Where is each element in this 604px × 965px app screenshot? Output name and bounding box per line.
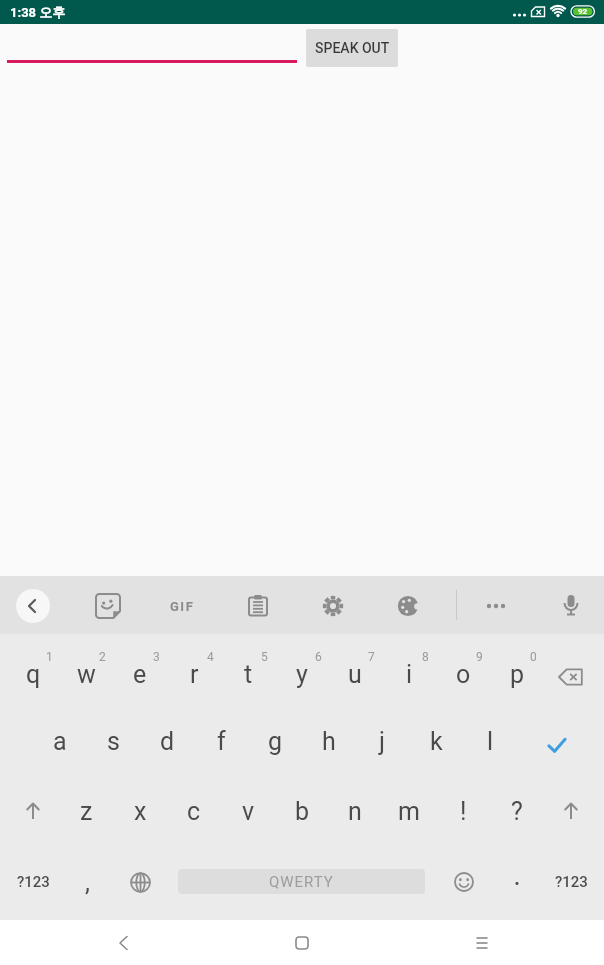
staticText: y [296,660,308,689]
staticText: q [26,660,41,689]
staticText: ! [460,797,467,826]
staticText: QWERTY [269,873,334,891]
button[interactable] [527,715,587,775]
button[interactable] [16,589,50,623]
button[interactable]: k [410,709,462,773]
button[interactable]: n [329,779,381,843]
staticText: i [406,660,413,689]
staticText: 1 [46,650,53,664]
staticText: l [487,727,494,756]
staticText: t [244,660,253,689]
button[interactable]: d [141,709,193,773]
button[interactable] [388,586,428,626]
button[interactable]: t [222,642,274,706]
staticText: f [217,727,226,756]
button[interactable]: i [383,642,435,706]
staticText: 0 [530,650,537,664]
button[interactable]: ?123 [7,850,59,914]
staticText: j [379,727,385,756]
staticText: u [348,660,362,689]
button[interactable]: , [61,850,113,914]
button[interactable] [476,586,516,626]
button[interactable] [545,645,597,709]
button[interactable]: x [114,779,166,843]
staticText: , [85,868,90,897]
staticText: 9 [476,650,483,664]
staticText: r [190,660,199,689]
button[interactable]: ?123 [545,850,597,914]
staticText: s [107,727,120,756]
button[interactable]: ! [437,779,489,843]
staticText: 92 [578,7,588,16]
staticText: 5 [261,650,268,664]
button[interactable] [238,586,278,626]
staticText: k [430,727,443,756]
button[interactable]: w [60,642,112,706]
button[interactable]: · [491,850,543,914]
staticText: a [53,727,67,756]
staticText: n [348,797,362,826]
staticText: d [160,727,175,756]
button[interactable]: r [168,642,220,706]
staticText: e [133,660,147,689]
button[interactable]: f [195,709,247,773]
button[interactable]: e [114,642,166,706]
button[interactable]: j [356,709,408,773]
staticText: 7 [368,650,375,664]
staticText: 8 [422,650,429,664]
staticText: ?123 [17,873,50,891]
button[interactable]: q [7,642,59,706]
button[interactable] [545,779,597,843]
staticText: h [322,727,336,756]
staticText: z [80,797,93,826]
button[interactable]: y [276,642,328,706]
staticText: ? [511,797,523,826]
staticText: v [242,797,255,826]
staticText: 1:38 오후 [10,4,66,20]
button[interactable]: GIF [160,586,204,626]
staticText: w [77,660,96,689]
button[interactable]: a [34,709,86,773]
staticText: ?123 [555,873,588,891]
button[interactable]: l [464,709,516,773]
staticText: p [510,660,525,689]
button[interactable] [114,850,166,914]
button[interactable]: ? [491,779,543,843]
staticText: SPEAK OUT [315,40,390,56]
staticText: 2 [99,650,106,664]
button[interactable] [313,586,353,626]
button[interactable]: QWERTY [178,869,425,894]
button[interactable] [7,779,59,843]
button[interactable]: g [249,709,301,773]
button[interactable] [94,923,154,963]
button[interactable]: SPEAK OUT [306,29,398,67]
button[interactable] [272,923,332,963]
button[interactable] [88,586,128,626]
button[interactable]: m [383,779,435,843]
staticText: 6 [315,650,322,664]
button[interactable]: s [87,709,139,773]
button[interactable]: o [437,642,489,706]
button[interactable] [452,923,512,963]
button[interactable]: z [60,779,112,843]
button[interactable]: v [222,779,274,843]
button[interactable] [7,29,297,63]
staticText: o [456,660,471,689]
staticText: g [268,727,283,756]
button[interactable]: c [168,779,220,843]
button[interactable] [551,586,591,626]
staticText: x [134,797,147,826]
staticText: 4 [207,650,214,664]
staticText: b [295,797,310,826]
button[interactable]: u [329,642,381,706]
staticText: · [514,871,521,894]
button[interactable]: p [491,642,543,706]
staticText: GIF [170,599,195,614]
button[interactable] [438,850,490,914]
button[interactable]: b [276,779,328,843]
staticText: c [187,797,201,826]
staticText: m [398,797,420,826]
button[interactable]: h [303,709,355,773]
staticText: 3 [153,650,160,664]
